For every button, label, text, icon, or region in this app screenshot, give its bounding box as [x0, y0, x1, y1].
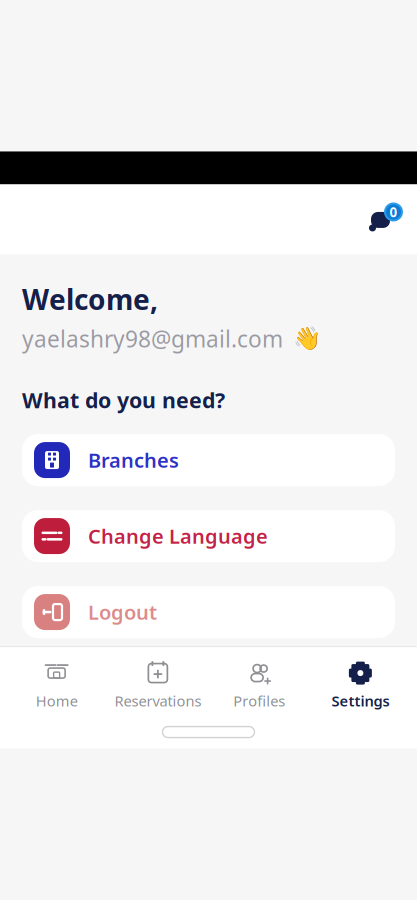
staticText: Change Language: [88, 523, 268, 549]
button[interactable]: Reservations: [107, 655, 208, 717]
staticText: Reservations: [114, 691, 201, 711]
button[interactable]: Branches: [22, 434, 395, 486]
staticText: Welcome,: [22, 280, 158, 318]
staticText: What do you need?: [22, 386, 225, 414]
staticText: yaelashry98@gmail.com: [22, 324, 283, 354]
button[interactable]: Settings: [310, 655, 411, 717]
button[interactable]: Profiles: [208, 655, 310, 717]
staticText: 0: [389, 203, 397, 221]
staticText: 👋: [293, 326, 321, 352]
button[interactable]: Logout: [22, 586, 395, 638]
button[interactable]: Notifications: [363, 197, 405, 241]
staticText: Logout: [88, 599, 157, 625]
staticText: Branches: [88, 447, 179, 473]
staticText: Home: [36, 691, 78, 711]
button[interactable]: Change Language: [22, 510, 395, 562]
button[interactable]: Home: [6, 655, 107, 717]
staticText: Profiles: [233, 691, 285, 711]
staticText: Settings: [331, 691, 389, 711]
